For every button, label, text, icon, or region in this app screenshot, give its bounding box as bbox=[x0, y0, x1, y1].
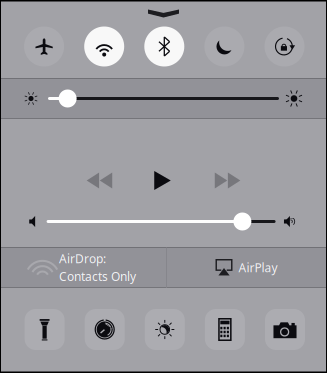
staticText: AirPlay bbox=[238, 259, 277, 275]
button[interactable]: Calculator bbox=[205, 309, 245, 350]
button[interactable]: Rotation Lock bbox=[264, 26, 304, 66]
button[interactable]: Night Shift bbox=[145, 309, 185, 350]
button[interactable]: Airplane Mode bbox=[24, 26, 64, 66]
button[interactable]: Flashlight bbox=[25, 309, 65, 350]
button[interactable]: Play bbox=[154, 171, 171, 190]
button[interactable]: Timer bbox=[85, 309, 125, 350]
button[interactable]: AirDrop: bbox=[1, 247, 166, 287]
button[interactable]: AirPlay bbox=[167, 247, 326, 287]
button[interactable]: Next bbox=[215, 172, 240, 188]
staticText: Contacts Only bbox=[59, 268, 136, 284]
button[interactable]: Wi-Fi bbox=[84, 26, 124, 66]
button[interactable]: Camera bbox=[265, 309, 305, 350]
button[interactable]: Previous bbox=[87, 172, 112, 188]
staticText: AirDrop: bbox=[59, 251, 106, 266]
button[interactable]: Bluetooth bbox=[144, 26, 184, 66]
button[interactable]: Do Not Disturb bbox=[204, 26, 244, 66]
